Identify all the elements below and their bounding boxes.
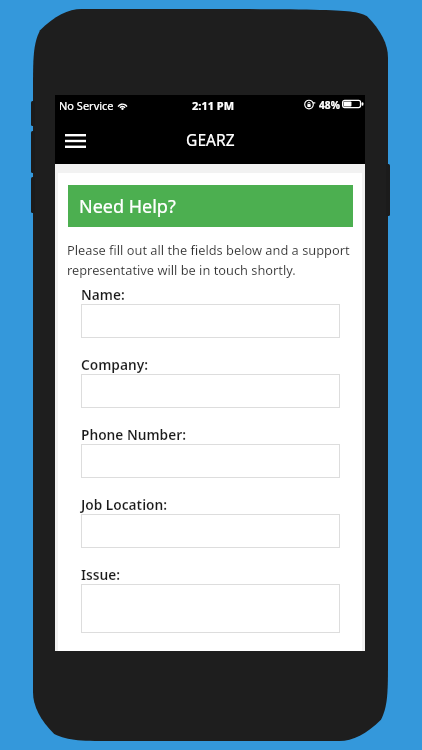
button[interactable]: Name input field [81, 304, 340, 338]
staticText: 48% [319, 98, 340, 112]
button[interactable]: Issue input field [81, 584, 340, 633]
staticText: Need Help? [79, 194, 176, 219]
button[interactable]: Phone Number input field [81, 444, 340, 478]
button[interactable]: Open navigation menu [56, 122, 94, 160]
staticText: GEARZ [186, 129, 235, 150]
staticText: Phone Number: [81, 425, 186, 444]
staticText: Name: [81, 285, 125, 304]
staticText: No Service [59, 98, 114, 113]
staticText: 2:11 PM [192, 98, 235, 113]
staticText: Issue: [81, 565, 121, 584]
staticText: Company: [81, 355, 148, 374]
button[interactable]: Job Location input field [81, 514, 340, 548]
button[interactable]: Company input field [81, 374, 340, 408]
staticText: Job Location: [81, 495, 167, 514]
staticText: Please fill out all the fields below and… [67, 241, 359, 278]
